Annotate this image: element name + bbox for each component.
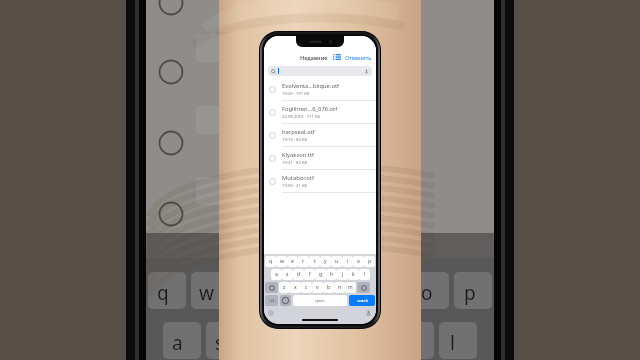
button[interactable]: Dictation toggle: [268, 310, 274, 316]
staticText: w: [199, 280, 214, 306]
button[interactable]: k: [348, 269, 359, 280]
staticText: Foglihten…6_076.otf: [282, 105, 338, 113]
staticText: p: [368, 258, 372, 265]
button[interactable]: Dictation: [365, 310, 372, 317]
staticText: 19:21 · 82 КБ: [282, 160, 308, 166]
button[interactable]: q: [265, 256, 276, 267]
staticText: q: [157, 280, 169, 306]
button[interactable]: f: [304, 269, 315, 280]
staticText: search: [357, 298, 368, 303]
button[interactable]: y: [320, 256, 331, 267]
staticText: x: [294, 284, 297, 291]
button[interactable]: a: [271, 269, 282, 280]
staticText: Недавние: [300, 54, 328, 61]
staticText: a: [275, 271, 278, 278]
button[interactable]: g: [315, 269, 326, 280]
button[interactable]: e: [287, 256, 298, 267]
staticText: a: [172, 330, 183, 356]
button[interactable]: x: [290, 282, 301, 293]
staticText: t: [314, 258, 316, 265]
staticText: w: [280, 258, 284, 265]
button[interactable]: j: [337, 269, 348, 280]
staticText: l: [450, 330, 455, 356]
button[interactable]: d: [293, 269, 304, 280]
staticText: l: [364, 271, 366, 278]
button[interactable]: [271, 66, 369, 76]
staticText: Klyakson.ttf: [282, 151, 314, 159]
button[interactable]: m: [345, 282, 356, 293]
button[interactable]: search: [349, 295, 375, 306]
staticText: o: [357, 258, 361, 265]
staticText: z: [283, 284, 286, 291]
staticText: Evolventa…blique.otf: [282, 82, 340, 90]
staticText: k: [352, 271, 355, 278]
button[interactable]: l: [359, 269, 370, 280]
staticText: s: [286, 271, 289, 278]
button[interactable]: w: [276, 256, 287, 267]
button[interactable]: Numbers: [265, 295, 278, 306]
staticText: m: [348, 284, 353, 291]
button[interactable]: c: [301, 282, 312, 293]
staticText: space: [315, 298, 325, 303]
staticText: d: [297, 271, 301, 278]
staticText: o: [421, 280, 433, 306]
staticText: h: [330, 271, 334, 278]
staticText: 19:09 · 21 КБ: [282, 183, 308, 189]
staticText: p: [464, 280, 476, 306]
staticText: s: [215, 330, 225, 356]
staticText: j: [342, 271, 344, 278]
button[interactable]: z: [279, 282, 290, 293]
staticText: c: [305, 284, 308, 291]
staticText: 19:19 · 60 КБ: [282, 137, 308, 143]
staticText: e: [291, 258, 294, 265]
button[interactable]: t: [309, 256, 320, 267]
staticText: g: [319, 271, 323, 278]
staticText: y: [324, 258, 327, 265]
staticText: r: [302, 258, 305, 265]
button[interactable]: p: [364, 256, 375, 267]
staticText: Отменить: [345, 54, 372, 61]
staticText: u: [335, 258, 339, 265]
staticText: Mutabor.otf: [282, 174, 314, 182]
staticText: 22.08.2023 · 711 КБ: [282, 114, 321, 120]
staticText: i: [347, 258, 349, 265]
button[interactable]: List view: [332, 52, 342, 62]
button[interactable]: Mutabor.otf: [264, 170, 376, 192]
button[interactable]: Klyakson.ttf: [264, 147, 376, 169]
button[interactable]: Foglihten…6_076.otf: [264, 101, 376, 123]
button[interactable]: Shift: [265, 282, 278, 293]
button[interactable]: u: [331, 256, 342, 267]
button[interactable]: i: [342, 256, 353, 267]
button[interactable]: s: [282, 269, 293, 280]
staticText: f: [309, 271, 311, 278]
button[interactable]: h: [326, 269, 337, 280]
staticText: v: [316, 284, 319, 291]
button[interactable]: Отменить: [345, 54, 372, 61]
button[interactable]: space: [293, 295, 347, 306]
button[interactable]: v: [312, 282, 323, 293]
staticText: n: [338, 284, 342, 291]
staticText: 19:20 · 101 КБ: [282, 91, 310, 97]
button[interactable]: Emoji: [280, 295, 291, 306]
staticText: b: [327, 284, 331, 291]
staticText: harpseal.otf: [282, 128, 315, 136]
button[interactable]: harpseal.otf: [264, 124, 376, 146]
button[interactable]: n: [334, 282, 345, 293]
staticText: 123: [269, 299, 275, 303]
button[interactable]: r: [298, 256, 309, 267]
button[interactable]: o: [353, 256, 364, 267]
button[interactable]: b: [323, 282, 334, 293]
button[interactable]: Evolventa…blique.otf: [264, 78, 376, 100]
button[interactable]: Backspace: [357, 282, 370, 293]
staticText: q: [269, 258, 273, 265]
